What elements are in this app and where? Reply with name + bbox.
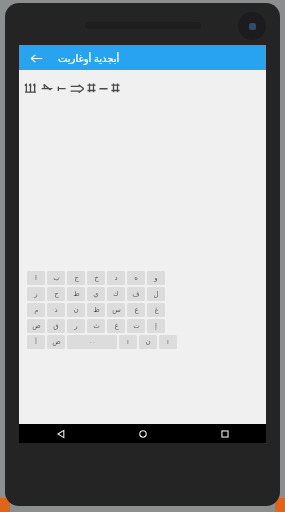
button[interactable]: غ bbox=[107, 319, 125, 333]
staticText: ض bbox=[52, 338, 61, 346]
staticText: ق bbox=[53, 322, 59, 330]
button[interactable]: ذ bbox=[47, 303, 65, 317]
button[interactable]: Recent apps bbox=[184, 424, 266, 443]
staticText: ع bbox=[134, 306, 139, 314]
button[interactable]: Back bbox=[26, 48, 46, 68]
staticText: ر bbox=[74, 322, 78, 330]
button[interactable]: ı bbox=[159, 335, 177, 349]
button[interactable]: ح bbox=[47, 287, 65, 301]
button[interactable]: ل bbox=[147, 287, 165, 301]
staticText: ك bbox=[113, 290, 119, 298]
staticText: ت bbox=[133, 322, 140, 330]
staticText: ذ bbox=[54, 306, 58, 314]
staticText: ı bbox=[127, 337, 129, 347]
staticText: ل bbox=[153, 290, 159, 298]
staticText: و bbox=[154, 274, 158, 282]
button[interactable]: س bbox=[107, 303, 125, 317]
button[interactable]: ڤ bbox=[127, 287, 145, 301]
staticText: ز bbox=[34, 290, 38, 298]
staticText: ص bbox=[32, 322, 41, 330]
button[interactable]: ض bbox=[47, 335, 65, 349]
staticText: ظ bbox=[93, 306, 100, 314]
button[interactable]: ظ bbox=[87, 303, 105, 317]
button[interactable]: ڠ bbox=[147, 303, 165, 317]
button[interactable]: ن bbox=[67, 303, 85, 317]
staticText: ج bbox=[74, 274, 79, 282]
staticText: أ bbox=[35, 338, 37, 346]
button[interactable]: ي bbox=[87, 287, 105, 301]
staticText: أبجدية أوغاريت bbox=[58, 51, 120, 65]
button[interactable]: ج bbox=[67, 271, 85, 285]
button[interactable]: ر bbox=[67, 319, 85, 333]
button[interactable]: و bbox=[147, 271, 165, 285]
button[interactable]: ı bbox=[119, 335, 137, 349]
button[interactable]: إ bbox=[147, 319, 165, 333]
staticText: ن bbox=[145, 338, 151, 346]
staticText: م bbox=[34, 306, 39, 314]
staticText: ڠ bbox=[154, 306, 159, 314]
staticText: ڤ bbox=[132, 290, 140, 298]
staticText: ا bbox=[35, 274, 37, 282]
staticText: ح bbox=[54, 290, 59, 298]
button[interactable]: ا bbox=[27, 271, 45, 285]
staticText: إ bbox=[155, 322, 157, 330]
button[interactable]: ز bbox=[27, 287, 45, 301]
staticText: خ bbox=[94, 274, 99, 282]
staticText: ı bbox=[167, 337, 169, 347]
staticText: · · bbox=[90, 338, 95, 346]
staticText: ب bbox=[53, 274, 60, 282]
staticText: س bbox=[112, 306, 121, 314]
staticText: ث bbox=[93, 322, 100, 330]
button[interactable]: د bbox=[107, 271, 125, 285]
staticText: ن bbox=[73, 306, 79, 314]
button[interactable]: ع bbox=[127, 303, 145, 317]
staticText: د bbox=[114, 274, 118, 282]
button[interactable]: ه bbox=[127, 271, 145, 285]
button[interactable]: أ bbox=[27, 335, 45, 349]
button[interactable]: ق bbox=[47, 319, 65, 333]
staticText: ط bbox=[73, 290, 80, 298]
staticText: ه bbox=[134, 274, 138, 282]
button[interactable]: Home bbox=[102, 424, 184, 443]
button[interactable]: م bbox=[27, 303, 45, 317]
button[interactable]: ص bbox=[27, 319, 45, 333]
staticText: غ bbox=[114, 322, 119, 330]
staticText: ي bbox=[93, 290, 99, 298]
button[interactable]: ت bbox=[127, 319, 145, 333]
button[interactable]: ط bbox=[67, 287, 85, 301]
button[interactable]: ك bbox=[107, 287, 125, 301]
button[interactable]: ب bbox=[47, 271, 65, 285]
button[interactable]: ن bbox=[139, 335, 157, 349]
button[interactable]: خ bbox=[87, 271, 105, 285]
button[interactable]: ث bbox=[87, 319, 105, 333]
button[interactable]: Back bbox=[19, 424, 102, 443]
